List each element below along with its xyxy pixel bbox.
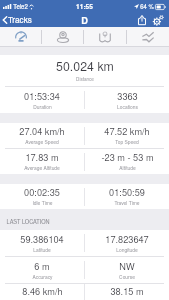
staticText: Duration [33, 103, 52, 110]
button[interactable]: 17.823647 [85, 230, 169, 256]
staticText: NW [119, 259, 135, 272]
staticText: 8.46 km/h [22, 284, 63, 297]
staticText: Tracks [8, 14, 32, 26]
staticText: Top Speed [115, 138, 139, 145]
staticText: LAST LOCATION [6, 218, 50, 226]
button[interactable]: 38.15 m [85, 284, 169, 300]
button[interactable]: Share [133, 13, 151, 27]
button[interactable]: Settings [151, 13, 169, 27]
staticText: Distance [76, 76, 94, 83]
staticText: Longitude [116, 246, 138, 253]
staticText: 00:02:35 [24, 185, 60, 198]
button[interactable]: 47.52 km/h [85, 123, 169, 148]
staticText: 17.83 m [25, 150, 59, 163]
staticText: 01:53:34 [24, 89, 60, 102]
staticText: Locations [117, 103, 138, 110]
staticText: 3363 [117, 89, 138, 102]
staticText: 50.024 km [56, 57, 114, 75]
button[interactable]: 01:53:34 [0, 87, 84, 113]
staticText: 17.823647 [105, 232, 149, 245]
staticText: 27.04 km/h [19, 124, 65, 137]
button[interactable]: 50.024 km [0, 55, 169, 86]
staticText: Accuracy [32, 273, 53, 280]
staticText: 38.15 m [110, 284, 144, 297]
staticText: -23 m - 53 m [101, 150, 154, 163]
staticText: 01:50:59 [109, 185, 145, 198]
button[interactable]: Locations [42, 27, 83, 47]
button[interactable]: 59.386104 [0, 230, 84, 256]
button[interactable]: 8.46 km/h [0, 284, 84, 300]
button[interactable]: Map [84, 27, 126, 47]
staticText: 64 % [140, 2, 154, 11]
button[interactable]: NW [85, 257, 169, 283]
staticText: 6 m [34, 259, 50, 272]
button[interactable]: 6 m [0, 257, 84, 283]
staticText: Altitude [119, 164, 136, 171]
staticText: Average Altitude [24, 164, 60, 171]
button[interactable]: 3363 [85, 87, 169, 113]
staticText: 47.52 km/h [104, 124, 150, 137]
staticText: Latitude [33, 246, 51, 253]
button[interactable]: Tracks [0, 13, 37, 27]
button[interactable]: 27.04 km/h [0, 123, 84, 148]
staticText: Average Speed [25, 138, 59, 145]
button[interactable]: -23 m - 53 m [85, 149, 169, 174]
staticText: 11:55 [76, 2, 93, 11]
staticText: 59.386104 [20, 232, 64, 245]
button[interactable]: 01:50:59 [85, 184, 169, 209]
staticText: Travel Time [114, 199, 140, 206]
button[interactable]: Dashboard [0, 27, 41, 47]
button[interactable]: 00:02:35 [0, 184, 84, 209]
staticText: D [81, 14, 88, 27]
staticText: Idle Time [32, 199, 53, 206]
staticText: Course [119, 273, 135, 280]
button[interactable]: Charts [127, 27, 169, 47]
staticText: Tele2 [13, 2, 28, 11]
button[interactable]: 17.83 m [0, 149, 84, 174]
